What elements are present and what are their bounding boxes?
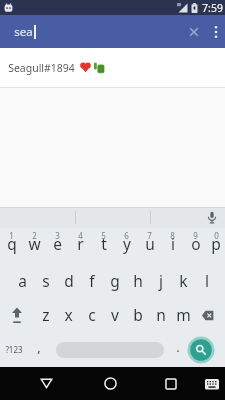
button[interactable]: k (172, 263, 195, 298)
button[interactable]: f (80, 263, 103, 298)
button[interactable] (202, 375, 222, 393)
button[interactable]: ?123 (0, 333, 30, 367)
staticText: y (123, 233, 131, 254)
button[interactable]: g (103, 263, 126, 298)
staticText: 0 (214, 230, 219, 241)
staticText: f (89, 270, 95, 291)
button[interactable]: z (34, 298, 57, 333)
staticText: p (211, 233, 221, 254)
button[interactable]: 9 (184, 228, 207, 263)
button[interactable]: 7 (138, 228, 161, 263)
staticText: 1 (9, 230, 14, 241)
staticText: j (159, 270, 163, 291)
button[interactable]: 4 (69, 228, 92, 263)
button[interactable]: Seagull#1894 (0, 48, 225, 88)
staticText: 7 (147, 230, 152, 241)
button[interactable] (0, 298, 34, 333)
button[interactable] (211, 22, 221, 42)
staticText: q (7, 233, 17, 254)
staticText: Seagull#1894 (8, 61, 75, 75)
button[interactable]: 3 (46, 228, 69, 263)
staticText: c (88, 304, 96, 325)
staticText: t (101, 233, 107, 254)
staticText: x (64, 304, 73, 325)
button[interactable] (56, 342, 164, 358)
button[interactable] (75, 207, 150, 228)
staticText: a (18, 270, 27, 291)
staticText: d (64, 270, 74, 291)
button[interactable]: s (34, 263, 57, 298)
staticText: v (111, 304, 119, 325)
button[interactable]: n (149, 298, 172, 333)
button[interactable] (183, 333, 218, 367)
staticText: s (42, 270, 50, 291)
button[interactable]: a (11, 263, 34, 298)
staticText: i (171, 233, 175, 254)
button[interactable]: l (195, 263, 218, 298)
staticText: u (145, 233, 155, 254)
button[interactable]: d (57, 263, 80, 298)
button[interactable]: , (30, 333, 47, 367)
staticText: b (133, 304, 143, 325)
staticText: 5 (101, 230, 106, 241)
button[interactable]: m (172, 298, 195, 333)
button[interactable]: b (126, 298, 149, 333)
staticText: 8 (170, 230, 175, 241)
staticText: , (37, 338, 41, 356)
staticText: o (191, 233, 201, 254)
staticText: e (53, 233, 62, 254)
button[interactable]: . (170, 333, 186, 367)
staticText: n (156, 304, 166, 325)
staticText: l (205, 270, 209, 291)
button[interactable]: v (103, 298, 126, 333)
staticText: ?123 (5, 344, 23, 355)
button[interactable]: 1 (0, 228, 23, 263)
staticText: sea (14, 24, 33, 40)
button[interactable] (34, 371, 59, 396)
button[interactable]: 8 (161, 228, 184, 263)
staticText: 7:59 (202, 1, 223, 15)
button[interactable] (0, 207, 75, 228)
button[interactable]: 2 (23, 228, 46, 263)
staticText: 4 (78, 230, 83, 241)
staticText: k (179, 270, 188, 291)
button[interactable]: x (57, 298, 80, 333)
button[interactable]: j (149, 263, 172, 298)
staticText: h (133, 270, 143, 291)
button[interactable]: c (80, 298, 103, 333)
staticText: r (77, 233, 84, 254)
button[interactable] (191, 298, 225, 333)
button[interactable]: 0 (207, 228, 225, 263)
button[interactable] (98, 371, 123, 396)
staticText: w (28, 233, 41, 254)
button[interactable]: 5 (92, 228, 115, 263)
button[interactable] (150, 207, 202, 228)
staticText: . (176, 338, 180, 356)
staticText: g (110, 270, 120, 291)
staticText: m (176, 304, 191, 325)
button[interactable] (186, 23, 202, 41)
button[interactable]: 6 (115, 228, 138, 263)
button[interactable] (202, 207, 222, 228)
button[interactable]: h (126, 263, 149, 298)
staticText: 3 (55, 230, 60, 241)
staticText: 2 (32, 230, 37, 241)
staticText: z (42, 304, 50, 325)
staticText: 9 (193, 230, 198, 241)
staticText: 6 (124, 230, 129, 241)
button[interactable] (158, 371, 183, 396)
